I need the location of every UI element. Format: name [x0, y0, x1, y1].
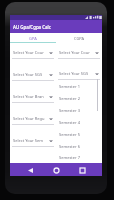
- button[interactable]: Semester 6: [59, 140, 102, 152]
- button[interactable]: GPA: [10, 33, 56, 43]
- button[interactable]: Select Your SGS: [59, 68, 99, 79]
- button[interactable]: CGPA: [56, 33, 102, 43]
- staticText: Semester 4: [59, 120, 81, 125]
- button[interactable]: Select Your Cour: [10, 43, 56, 65]
- staticText: GPA: [29, 36, 37, 41]
- staticText: Select Your Bran: [13, 94, 44, 99]
- staticText: Select Your Regu: [13, 116, 45, 121]
- staticText: AU Gpa/Cgpa Calc: [13, 24, 51, 30]
- staticText: Select Your Sem: [13, 138, 43, 143]
- staticText: Select Your SGS: [13, 72, 43, 77]
- staticText: Semester 6: [59, 144, 81, 149]
- button[interactable]: Back: [24, 164, 36, 176]
- button[interactable]: Semester 3: [59, 104, 102, 116]
- staticText: Semester 2: [59, 96, 81, 101]
- button[interactable]: Select Your Cour: [56, 43, 102, 65]
- staticText: Semester 3: [59, 108, 81, 113]
- staticText: Semester 7: [59, 155, 81, 160]
- staticText: Semester 1: [59, 84, 81, 89]
- staticText: Select Your Cour: [13, 50, 44, 55]
- button[interactable]: Select Your Bran: [10, 87, 56, 109]
- button[interactable]: AU Gpa/Cgpa Calc: [10, 20, 102, 33]
- staticText: CGPA: [74, 36, 85, 41]
- button[interactable]: Semester 1: [59, 80, 102, 92]
- button[interactable]: Semester 5: [59, 128, 102, 140]
- button[interactable]: Semester 7: [59, 152, 102, 163]
- staticText: Semester 5: [59, 132, 81, 137]
- button[interactable]: Semester 4: [59, 116, 102, 128]
- button[interactable]: Select Your Regu: [10, 109, 56, 131]
- button[interactable]: Semester 2: [59, 92, 102, 104]
- staticText: Select Your Cour: [59, 50, 90, 55]
- button[interactable]: Recents: [76, 164, 88, 176]
- button[interactable]: Select Your Sem: [10, 131, 56, 153]
- button[interactable]: Select Your SGS: [10, 65, 56, 87]
- staticText: Select Your SGS: [59, 71, 89, 76]
- button[interactable]: Home: [50, 164, 62, 176]
